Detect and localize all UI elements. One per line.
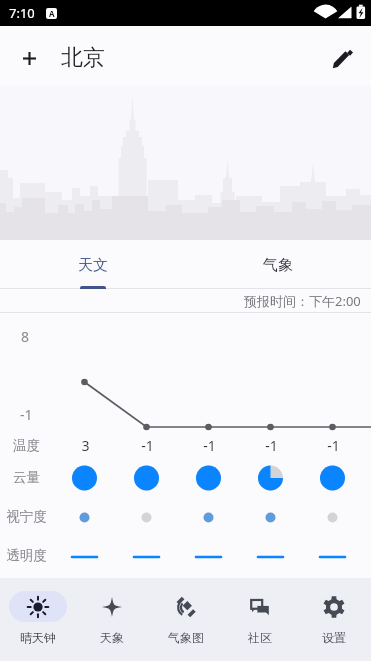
staticText: -1	[327, 436, 340, 455]
button[interactable]: 气象	[185, 240, 371, 289]
button[interactable]: 社区	[223, 578, 297, 661]
button[interactable]: 天象	[75, 578, 149, 661]
button[interactable]: 设置	[297, 578, 371, 661]
staticText: 北京	[61, 44, 105, 72]
staticText: 气象图	[168, 630, 204, 645]
staticText: 云量	[13, 469, 40, 486]
staticText: 晴天钟	[20, 630, 56, 645]
staticText: 7:10	[9, 4, 35, 22]
staticText: -1	[20, 405, 33, 424]
staticText: -1	[141, 436, 154, 455]
staticText: 透明度	[6, 547, 47, 564]
button[interactable]: Edit	[320, 36, 364, 80]
staticText: A	[49, 8, 55, 19]
staticText: 预报时间：下午2:00	[244, 292, 361, 310]
staticText: 气象	[263, 256, 293, 275]
staticText: 设置	[322, 630, 346, 645]
button[interactable]: 晴天钟	[0, 578, 75, 661]
staticText: 社区	[248, 630, 272, 645]
staticText: 8	[21, 327, 30, 346]
button[interactable]: Add city	[0, 30, 58, 86]
staticText: 视宁度	[6, 508, 47, 525]
staticText: 天文	[78, 256, 108, 275]
staticText: 温度	[13, 437, 40, 454]
staticText: -1	[265, 436, 278, 455]
button[interactable]: 天文	[0, 240, 185, 289]
button[interactable]: 气象图	[149, 578, 223, 661]
staticText: -1	[203, 436, 216, 455]
staticText: 天象	[100, 630, 124, 645]
staticText: 3	[81, 436, 90, 455]
